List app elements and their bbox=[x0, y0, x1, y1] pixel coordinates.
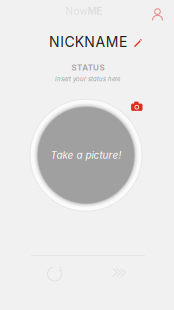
button[interactable]: Edit nickname bbox=[130, 35, 146, 51]
staticText: ME bbox=[87, 5, 102, 17]
staticText: STATUS bbox=[71, 63, 104, 72]
button[interactable]: Take a picture! bbox=[30, 99, 142, 211]
staticText: Insert your status here bbox=[55, 75, 120, 83]
button[interactable]: Profile bbox=[144, 2, 170, 26]
staticText: Now bbox=[65, 5, 87, 17]
button[interactable]: Take photo bbox=[128, 98, 146, 114]
staticText: Take a picture! bbox=[50, 149, 121, 161]
staticText: NICKNAME bbox=[49, 33, 127, 50]
